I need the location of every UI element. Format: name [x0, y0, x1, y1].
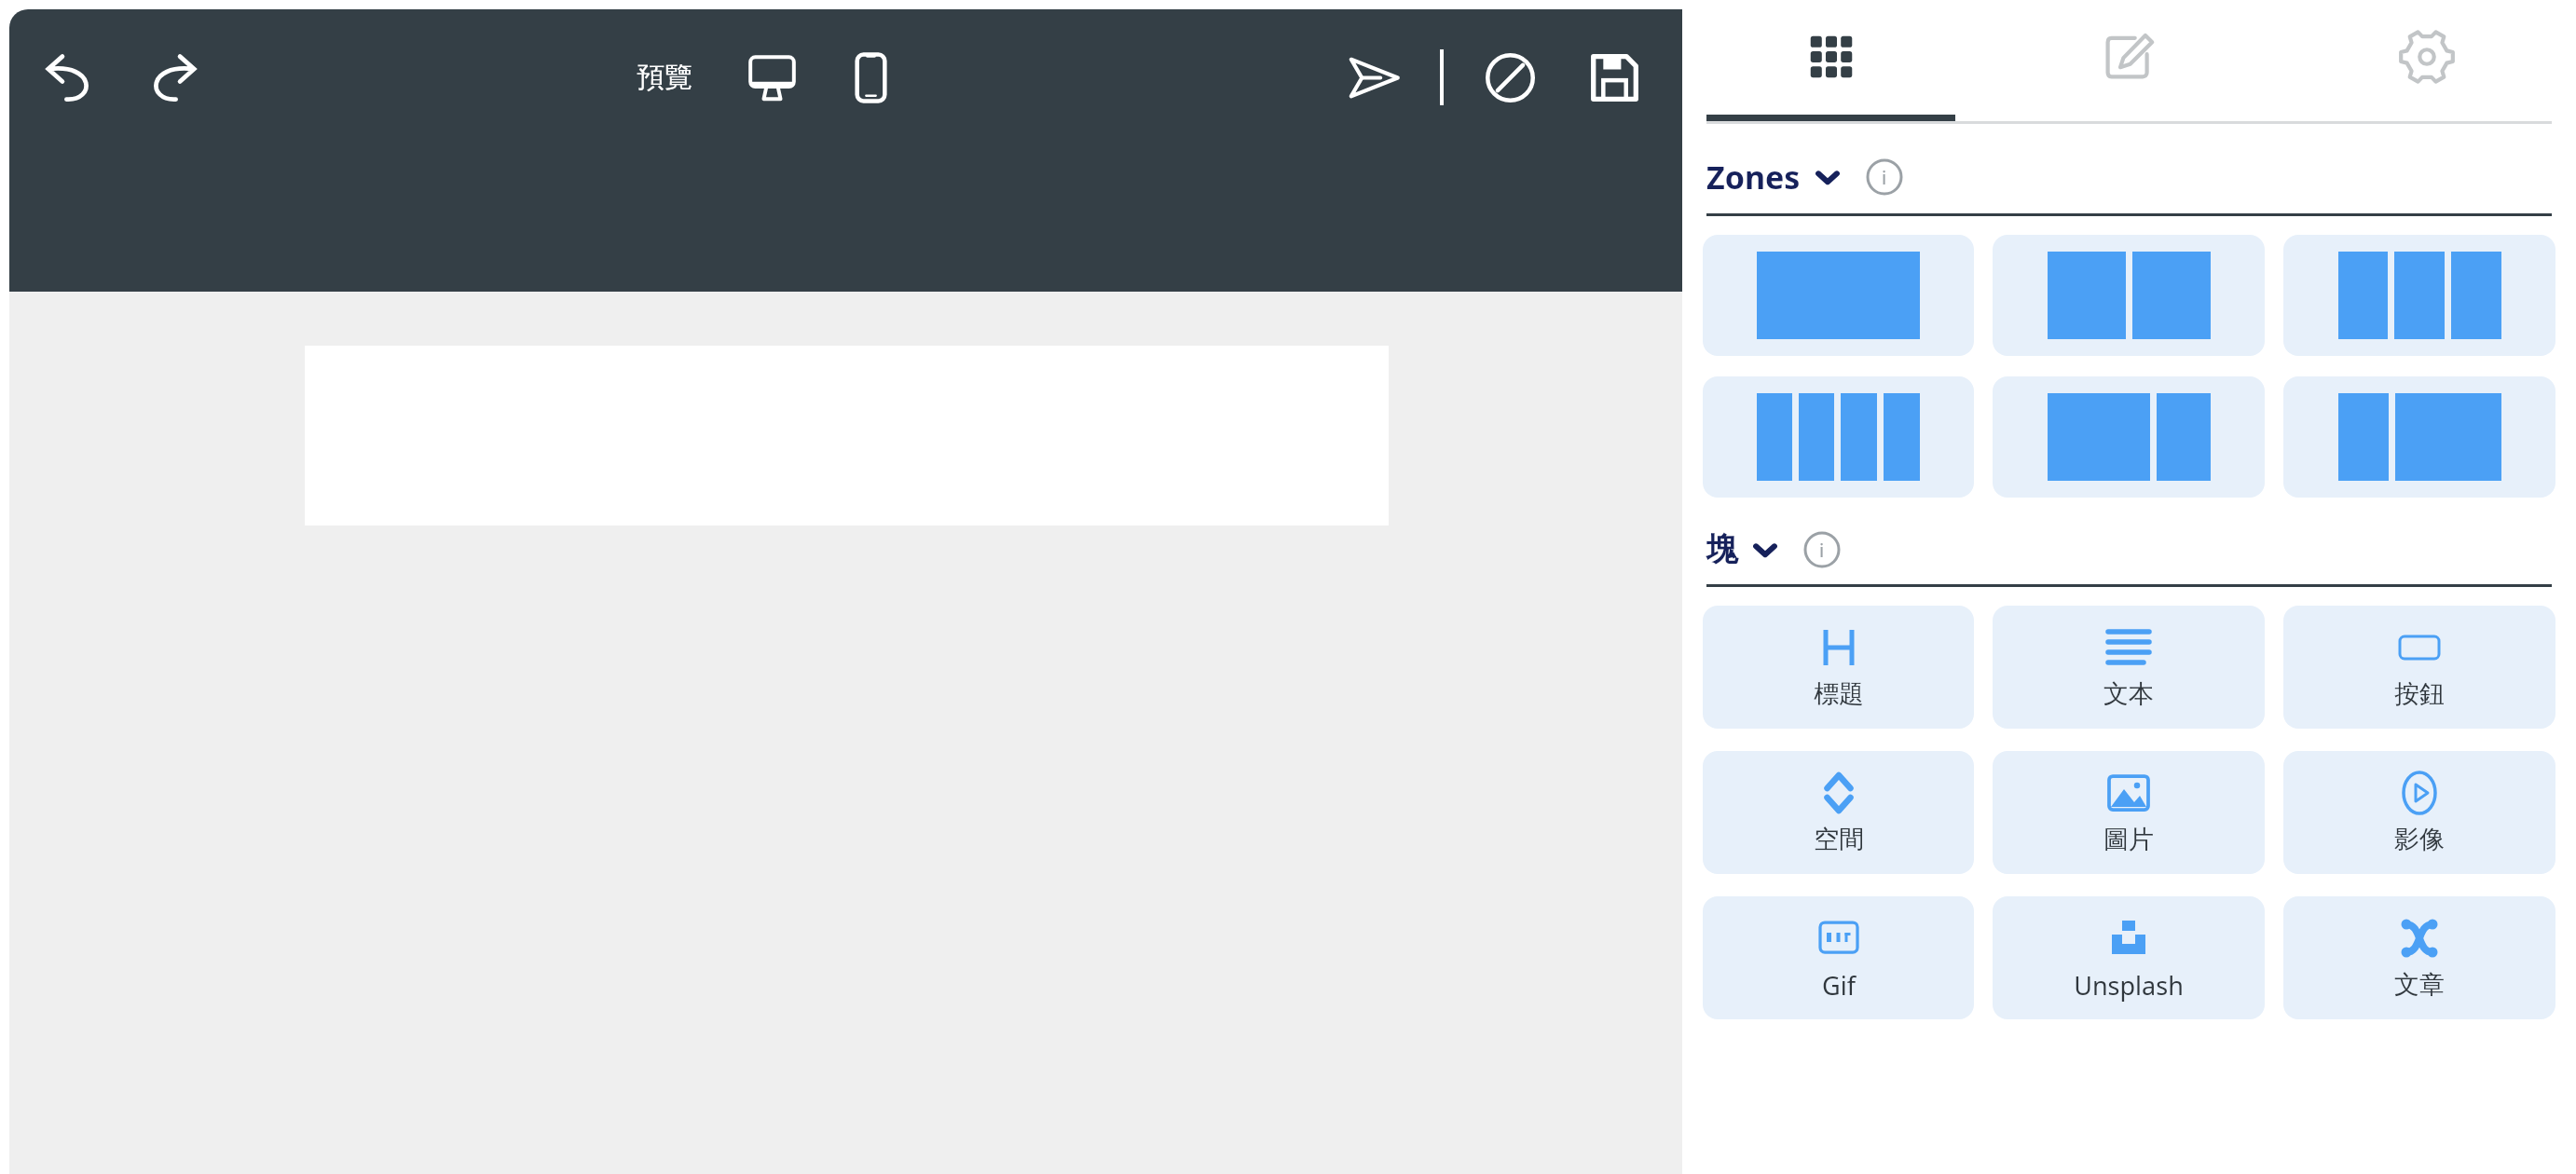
button[interactable]: Information	[1803, 531, 1841, 568]
button[interactable]: 標題	[1703, 606, 1974, 729]
button[interactable]: Unsplash	[1993, 896, 2265, 1019]
button[interactable]: 塊	[1706, 524, 1777, 575]
button[interactable]: Undo	[28, 34, 116, 121]
button[interactable]: Zone 1 column	[1703, 235, 1974, 356]
button[interactable]: 預覽	[629, 50, 700, 104]
button[interactable]: Settings	[2278, 0, 2576, 121]
button[interactable]: Zone 2 column	[1993, 376, 2265, 498]
button[interactable]: 空間	[1703, 751, 1974, 874]
button[interactable]: Zone 2 column	[1993, 235, 2265, 356]
button[interactable]: 文章	[2283, 896, 2555, 1019]
staticText: i	[1819, 538, 1825, 563]
staticText: 影像	[2394, 824, 2445, 855]
button[interactable]: Save	[1570, 34, 1658, 121]
button[interactable]: Desktop preview	[728, 34, 815, 121]
button[interactable]: Zone 4 column	[1703, 376, 1974, 498]
button[interactable]: 影像	[2283, 751, 2555, 874]
button[interactable]: Mobile preview	[827, 34, 914, 121]
staticText: i	[1882, 165, 1887, 190]
staticText: 圖片	[2103, 824, 2154, 855]
button[interactable]: 文本	[1993, 606, 2265, 729]
button[interactable]: Redo	[127, 34, 214, 121]
staticText: Zones	[1706, 156, 1801, 198]
staticText: 塊	[1706, 529, 1738, 569]
staticText: Unsplash	[2074, 968, 2184, 1003]
staticText: 預覽	[637, 60, 692, 95]
staticText: 空間	[1814, 824, 1864, 855]
button[interactable]: Information	[1866, 158, 1903, 196]
staticText: 按鈕	[2394, 678, 2445, 710]
button[interactable]: 按鈕	[2283, 606, 2555, 729]
button[interactable]: Blocks	[1682, 0, 1980, 121]
button[interactable]: Send	[1330, 34, 1418, 121]
button[interactable]: Zones	[1706, 150, 1840, 204]
button[interactable]: Zone 2 column	[2283, 376, 2555, 498]
button[interactable]: Gif	[1703, 896, 1974, 1019]
staticText: 文本	[2103, 678, 2154, 710]
staticText: Gif	[1822, 968, 1856, 1003]
staticText: 文章	[2394, 969, 2445, 1001]
button[interactable]: Edit	[1980, 0, 2278, 121]
staticText: 標題	[1814, 678, 1864, 710]
button[interactable]: Zone 3 column	[2283, 235, 2555, 356]
button[interactable]: Cancel	[1466, 34, 1554, 121]
button[interactable]: 圖片	[1993, 751, 2265, 874]
